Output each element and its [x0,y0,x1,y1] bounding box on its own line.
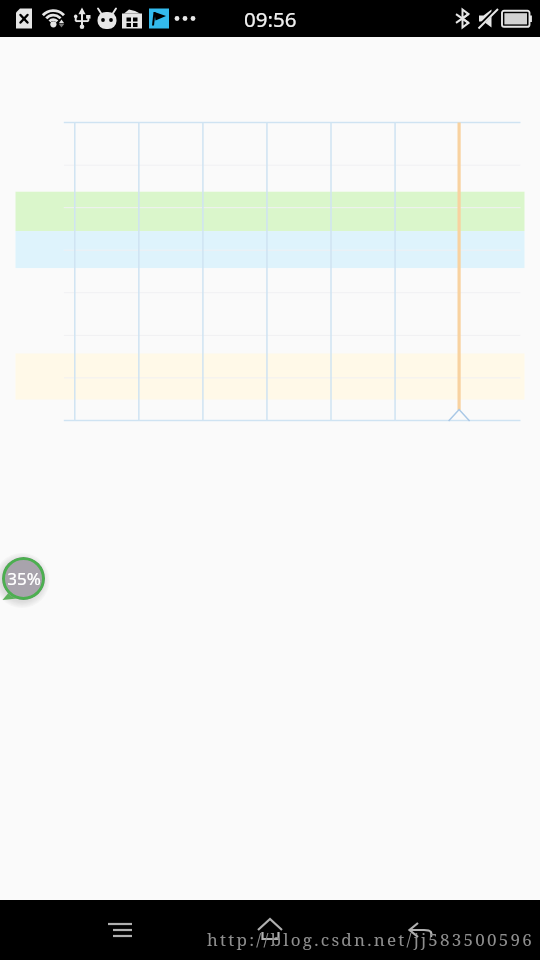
staticText: http://blog.csdn.net/jj583500596 [207,928,535,951]
button[interactable]: Home [240,900,300,960]
staticText: 09:56 [244,5,297,33]
button[interactable]: 35% [2,557,45,600]
staticText: 35% [7,567,41,590]
button[interactable]: Back [390,900,450,960]
button[interactable]: Recent apps [90,900,150,960]
